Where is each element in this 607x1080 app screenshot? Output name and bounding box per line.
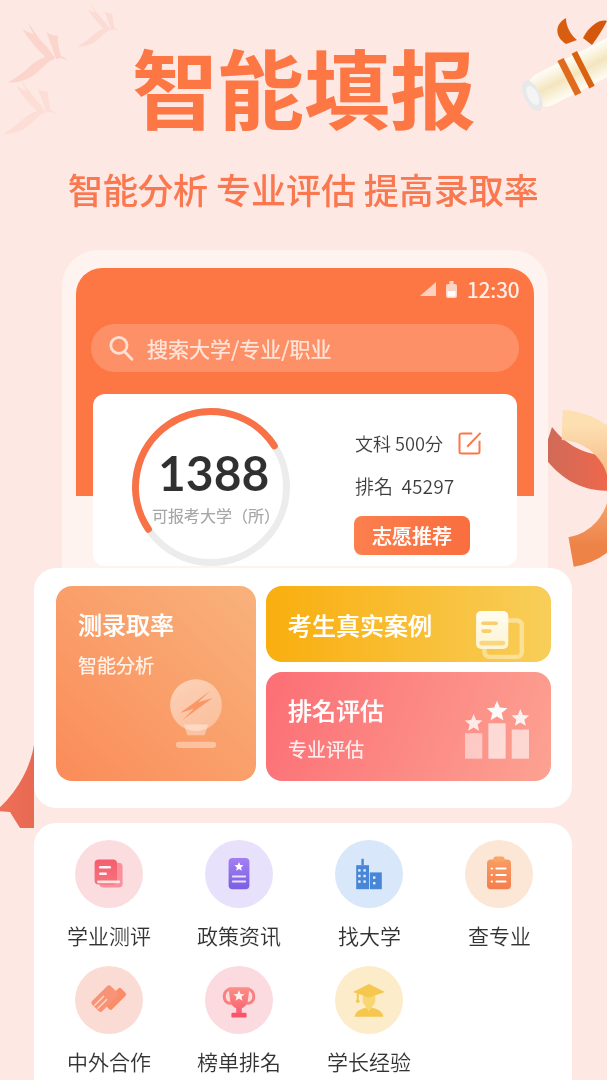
staticText: 测录取率 xyxy=(78,606,174,641)
button[interactable]: 志愿推荐 xyxy=(354,516,470,555)
staticText: 智能填报 xyxy=(132,23,476,148)
staticText: 排名评估 xyxy=(288,692,384,727)
staticText: 志愿推荐 xyxy=(372,521,452,550)
staticText: 可报考大学（所） xyxy=(152,503,281,526)
staticText: 智能分析 xyxy=(78,651,155,679)
button[interactable]: 考生真实案例 xyxy=(266,586,551,662)
button[interactable]: 学长经验 xyxy=(309,966,429,1076)
staticText: 搜索大学/专业/职业 xyxy=(147,333,332,363)
button[interactable]: 测录取率 xyxy=(56,586,256,781)
button[interactable]: 学业测评 xyxy=(49,840,169,950)
button[interactable]: 找大学 xyxy=(309,840,429,950)
staticText: 学业测评 xyxy=(67,920,151,950)
staticText: 12:30 xyxy=(467,274,520,304)
staticText: 中外合作 xyxy=(67,1046,151,1076)
button[interactable]: 排名评估 xyxy=(266,672,551,781)
button[interactable]: 搜索大学/专业/职业 xyxy=(91,324,519,372)
staticText: 政策资讯 xyxy=(197,920,281,950)
staticText: 找大学 xyxy=(338,920,401,950)
staticText: 考生真实案例 xyxy=(288,607,432,642)
staticText: 专业评估 xyxy=(288,735,365,763)
button[interactable]: 政策资讯 xyxy=(179,840,299,950)
button[interactable]: 查专业 xyxy=(439,840,559,950)
staticText: 排名 45297 xyxy=(355,472,455,500)
staticText: 查专业 xyxy=(468,920,531,950)
staticText: 1388 xyxy=(158,444,270,502)
staticText: 文科 500分 xyxy=(355,430,444,456)
button[interactable]: 榜单排名 xyxy=(179,966,299,1076)
button[interactable]: 中外合作 xyxy=(49,966,169,1076)
button[interactable]: 编辑 xyxy=(458,432,481,455)
staticText: 学长经验 xyxy=(327,1046,411,1076)
staticText: 智能分析 专业评估 提高录取率 xyxy=(68,163,539,214)
staticText: 榜单排名 xyxy=(197,1046,281,1076)
